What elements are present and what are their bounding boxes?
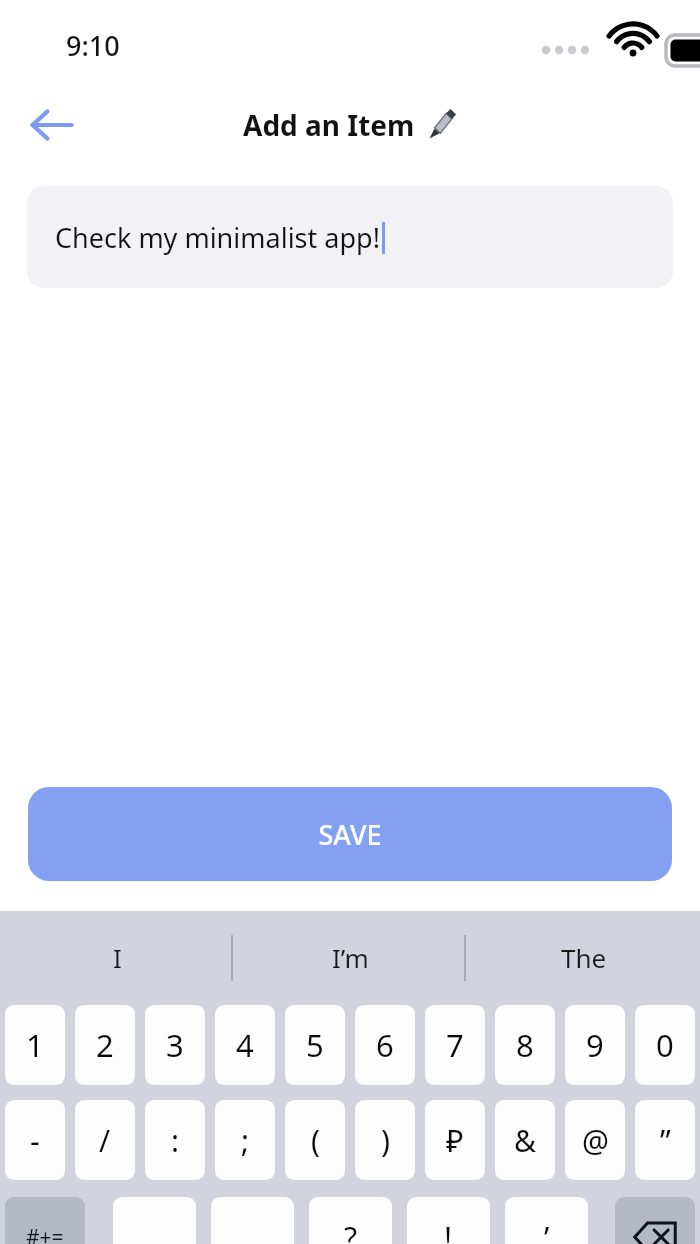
button[interactable]: 9 (565, 1005, 625, 1085)
staticText: / (99, 1120, 111, 1161)
button[interactable]: Backspace (615, 1197, 695, 1244)
button[interactable] (211, 1197, 294, 1244)
button[interactable]: 1 (5, 1005, 65, 1085)
staticText: I’m (332, 940, 369, 975)
button[interactable]: @ (565, 1100, 625, 1180)
button[interactable]: 4 (215, 1005, 275, 1085)
staticText: 8 (516, 1024, 534, 1066)
button[interactable]: 8 (495, 1005, 555, 1085)
staticText: Add an Item (243, 106, 415, 144)
staticText: - (30, 1120, 40, 1161)
button[interactable]: 2 (75, 1005, 135, 1085)
staticText: Check my minimalist app! (55, 219, 380, 256)
staticText: ’ (544, 1217, 550, 1244)
button[interactable]: ? (309, 1197, 392, 1244)
staticText: SAVE (318, 816, 382, 853)
staticText: ( (311, 1120, 320, 1161)
button[interactable] (113, 1197, 196, 1244)
button[interactable]: 3 (145, 1005, 205, 1085)
button[interactable]: I (0, 911, 234, 1003)
staticText: & (514, 1120, 536, 1161)
button[interactable]: ; (215, 1100, 275, 1180)
staticText: @ (582, 1120, 609, 1161)
staticText: 7 (446, 1024, 464, 1066)
staticText: The (561, 940, 607, 975)
staticText: 9 (586, 1024, 604, 1066)
staticText: 6 (376, 1024, 394, 1066)
button[interactable]: The (467, 911, 700, 1003)
staticText: ! (444, 1217, 453, 1244)
staticText: ? (344, 1217, 358, 1244)
button[interactable]: ’ (505, 1197, 588, 1244)
button[interactable]: 5 (285, 1005, 345, 1085)
button[interactable]: I’m (234, 911, 467, 1003)
staticText: ₽ (446, 1120, 464, 1161)
button[interactable]: ( (285, 1100, 345, 1180)
button[interactable]: #+= (5, 1197, 85, 1244)
staticText: : (171, 1120, 180, 1161)
button[interactable]: ₽ (425, 1100, 485, 1180)
button[interactable]: ) (355, 1100, 415, 1180)
button[interactable]: SAVE (28, 787, 672, 881)
staticText: #+= (26, 1223, 64, 1244)
button[interactable]: 6 (355, 1005, 415, 1085)
button[interactable]: / (75, 1100, 135, 1180)
button[interactable]: 7 (425, 1005, 485, 1085)
button[interactable]: Back (18, 92, 84, 158)
staticText: 5 (306, 1024, 324, 1066)
staticText: 9:10 (66, 27, 120, 64)
staticText: ) (381, 1120, 390, 1161)
button[interactable]: Check my minimalist app! (27, 186, 673, 288)
staticText: ” (660, 1120, 671, 1161)
staticText: 2 (96, 1024, 114, 1066)
button[interactable]: ! (407, 1197, 490, 1244)
staticText: ; (241, 1120, 250, 1161)
staticText: 1 (26, 1024, 44, 1066)
staticText: I (113, 940, 122, 975)
button[interactable]: 0 (635, 1005, 695, 1085)
button[interactable]: ” (635, 1100, 695, 1180)
button[interactable]: & (495, 1100, 555, 1180)
staticText: 3 (166, 1024, 184, 1066)
button[interactable]: - (5, 1100, 65, 1180)
button[interactable]: : (145, 1100, 205, 1180)
staticText: 4 (236, 1024, 254, 1066)
staticText: 0 (656, 1024, 674, 1066)
